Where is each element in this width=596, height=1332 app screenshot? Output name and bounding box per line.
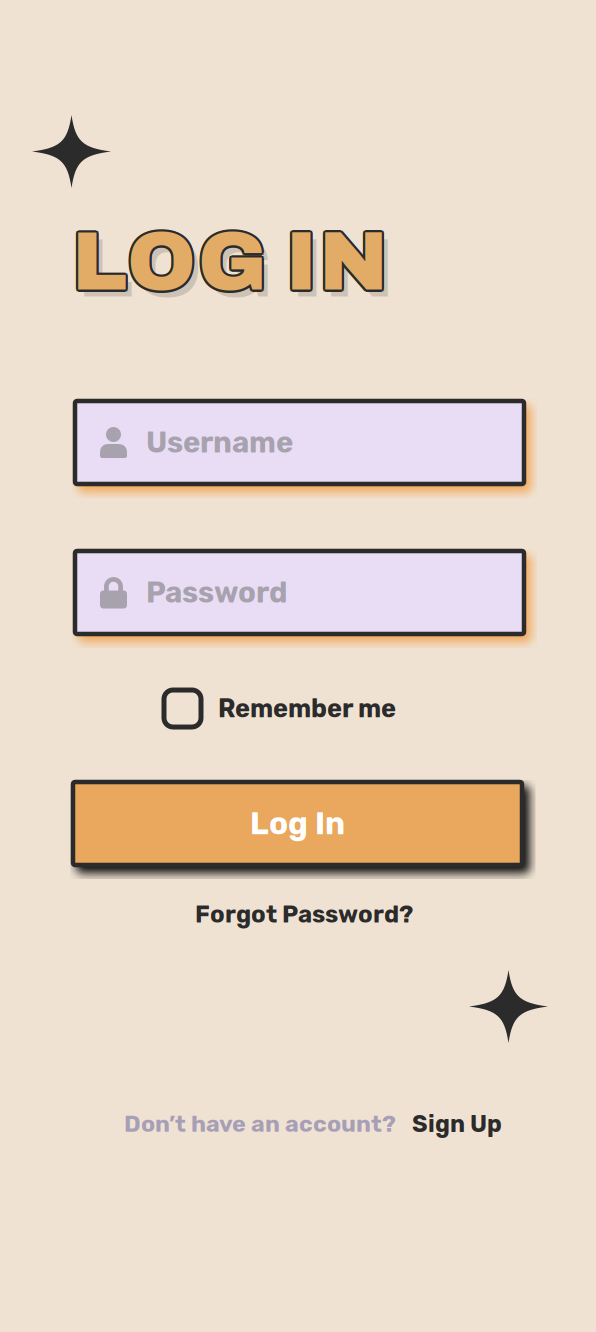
button[interactable]: Remember me bbox=[164, 690, 396, 727]
staticText: LOG IN bbox=[74, 219, 390, 309]
staticText: Sign Up bbox=[412, 1110, 502, 1138]
button[interactable]: Log In bbox=[73, 782, 522, 865]
staticText: Remember me bbox=[218, 693, 396, 723]
staticText: LOG IN bbox=[74, 217, 390, 307]
button[interactable]: Sign Up bbox=[412, 1110, 502, 1138]
staticText: Username bbox=[146, 425, 293, 460]
staticText: LOG IN bbox=[78, 224, 394, 314]
staticText: LOG IN bbox=[72, 219, 388, 309]
staticText: LOG IN bbox=[70, 219, 386, 309]
staticText: LOG IN bbox=[70, 215, 386, 305]
staticText: LOG IN bbox=[72, 215, 388, 305]
staticText: LOG IN bbox=[74, 215, 390, 305]
staticText: Password bbox=[146, 575, 288, 610]
button[interactable]: Forgot Password? bbox=[195, 900, 413, 928]
button[interactable]: Password bbox=[75, 551, 524, 634]
staticText: Log In bbox=[250, 805, 345, 842]
staticText: LOG IN bbox=[70, 217, 386, 307]
button[interactable]: Username bbox=[75, 401, 524, 484]
staticText: Don’t have an account? bbox=[124, 1110, 396, 1138]
staticText: Forgot Password? bbox=[195, 900, 413, 928]
staticText: LOG IN bbox=[72, 217, 388, 307]
